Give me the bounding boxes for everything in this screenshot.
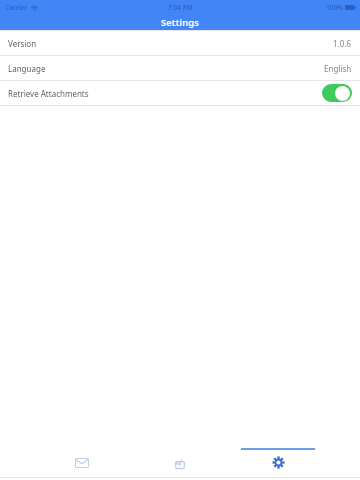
button[interactable]: Settings — [241, 440, 315, 477]
staticText: 7:04 PM — [168, 3, 193, 12]
staticText: Settings — [161, 16, 199, 29]
button[interactable]: Retrieve Attachments toggle — [322, 84, 352, 102]
staticText: Version — [8, 38, 37, 49]
button[interactable]: Lock — [143, 440, 217, 477]
staticText: English — [324, 63, 352, 74]
button[interactable]: Language — [0, 56, 360, 80]
staticText: Carrier — [5, 3, 28, 12]
staticText: 100% — [326, 3, 343, 12]
button[interactable]: Mail — [45, 440, 119, 477]
button[interactable]: Version — [0, 31, 360, 55]
staticText: Language — [8, 63, 46, 74]
button[interactable]: Retrieve Attachments — [0, 81, 360, 105]
staticText: Retrieve Attachments — [8, 88, 89, 99]
staticText: 1.0.6 — [333, 38, 352, 49]
